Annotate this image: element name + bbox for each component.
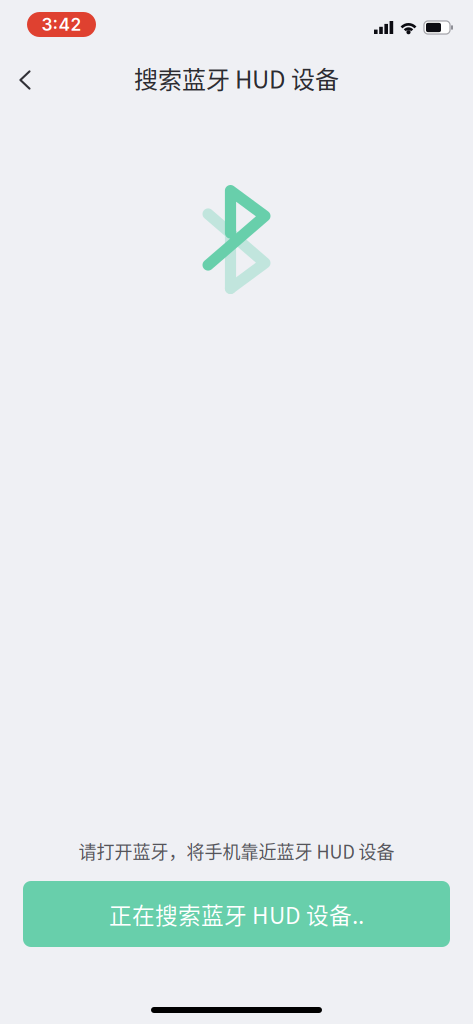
button[interactable]: Back [0, 55, 47, 101]
staticText: 请打开蓝牙，将手机靠近蓝牙 HUD 设备 [78, 838, 394, 864]
staticText: 正在搜索蓝牙 HUD 设备.. [109, 898, 364, 930]
staticText: 搜索蓝牙 HUD 设备 [134, 61, 339, 95]
staticText: 3:42 [41, 14, 81, 35]
button[interactable]: 正在搜索蓝牙 HUD 设备.. [23, 881, 450, 947]
